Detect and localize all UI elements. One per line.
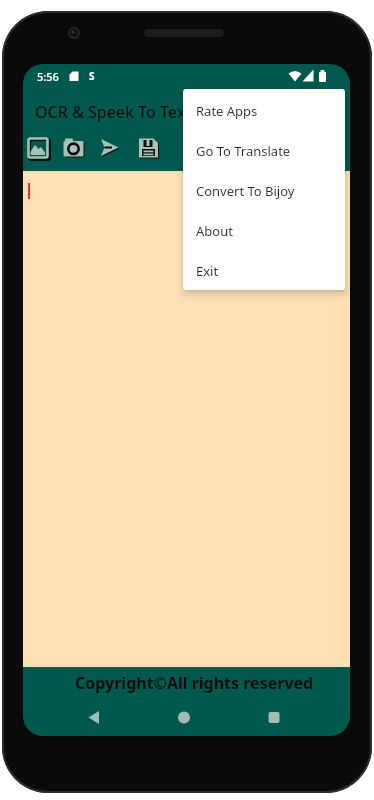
button[interactable] (170, 703, 198, 731)
button[interactable] (96, 134, 124, 162)
button[interactable] (59, 134, 87, 162)
staticText: OCR & Speek To Text (35, 101, 192, 123)
staticText: Go To Translate (196, 142, 291, 160)
staticText: 5:56 (37, 69, 59, 84)
button[interactable]: Rate Apps (183, 91, 345, 131)
button[interactable] (23, 171, 350, 667)
staticText: Exit (196, 262, 219, 280)
button[interactable] (24, 134, 52, 162)
staticText: S (89, 69, 95, 83)
button[interactable]: Convert To Bijoy (183, 171, 345, 211)
button[interactable]: Exit (183, 251, 345, 290)
button[interactable] (134, 134, 162, 162)
button[interactable] (260, 703, 288, 731)
staticText: Rate Apps (196, 102, 258, 120)
staticText: Copyright©All rights reserved (75, 672, 314, 694)
button[interactable]: Go To Translate (183, 131, 345, 171)
button[interactable]: About (183, 211, 345, 251)
button[interactable] (80, 703, 108, 731)
staticText: About (196, 222, 233, 240)
staticText: Convert To Bijoy (196, 182, 295, 200)
